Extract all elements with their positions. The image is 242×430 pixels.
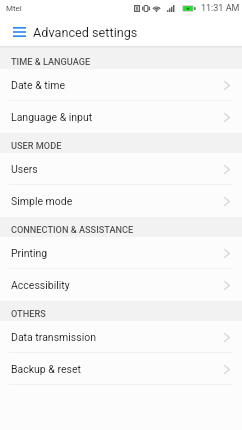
button[interactable]: Data transmission	[0, 321, 242, 353]
staticText: Users	[11, 163, 38, 175]
staticText: Date & time	[11, 79, 66, 91]
button[interactable]: Printing	[0, 237, 242, 269]
staticText: Advanced settings	[33, 25, 138, 40]
staticText: Printing	[11, 247, 48, 259]
staticText: Language & input	[11, 111, 93, 123]
button[interactable]: Open navigation menu	[6, 19, 32, 45]
button[interactable]: Simple mode	[0, 185, 242, 217]
staticText: 11:31 AM	[201, 3, 240, 14]
staticText: OTHERS	[11, 308, 46, 319]
button[interactable]: Backup & reset	[0, 353, 242, 385]
button[interactable]: Language & input	[0, 101, 242, 133]
button[interactable]: Accessibility	[0, 269, 242, 301]
staticText: USER MODE	[11, 140, 62, 151]
staticText: TIME & LANGUAGE	[11, 56, 91, 67]
staticText: Data transmission	[11, 331, 97, 343]
button[interactable]: Date & time	[0, 69, 242, 101]
staticText: Accessibility	[11, 279, 70, 291]
staticText: Simple mode	[11, 195, 73, 207]
staticText: Backup & reset	[11, 363, 81, 375]
button[interactable]: Users	[0, 153, 242, 185]
staticText: Mtel	[6, 4, 22, 13]
staticText: CONNECTION & ASSISTANCE	[11, 224, 134, 235]
